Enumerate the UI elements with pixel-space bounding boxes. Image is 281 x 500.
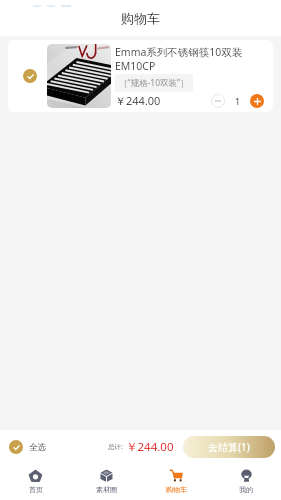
staticText: 1 <box>225 95 250 107</box>
staticText: 购物车 <box>121 10 160 26</box>
button[interactable]: 我的 <box>211 463 281 500</box>
staticText: 素材圈 <box>96 485 117 494</box>
staticText: ￥244.00 <box>126 439 174 455</box>
staticText: 购物车 <box>166 485 187 494</box>
button[interactable]: Decrease quantity <box>211 94 225 108</box>
staticText: 全选 <box>29 442 46 453</box>
button[interactable]: 全选 <box>9 440 46 454</box>
staticText: 去结算(1) <box>208 440 250 454</box>
staticText: 我的 <box>239 485 253 494</box>
button[interactable]: 首页 <box>0 463 71 500</box>
staticText: 总计: <box>108 442 123 451</box>
button[interactable]: Increase quantity <box>250 94 264 108</box>
button[interactable]: 去结算(1) <box>183 436 275 458</box>
button[interactable]: 购物车 <box>141 463 211 500</box>
staticText: Emma系列不锈钢筷10双装EM10CP <box>115 45 264 73</box>
staticText: 首页 <box>29 485 43 494</box>
button[interactable]: Select item <box>23 69 37 83</box>
button[interactable]: 素材圈 <box>71 463 141 500</box>
staticText: ￥244.00 <box>115 93 161 108</box>
staticText: ［“规格-10双装”］ <box>119 77 189 89</box>
